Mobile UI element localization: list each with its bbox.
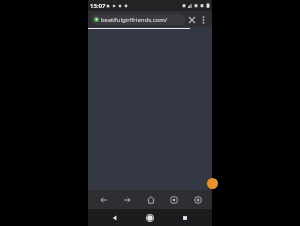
button[interactable]: Home	[142, 210, 158, 226]
button[interactable]: Recents	[177, 210, 193, 226]
button[interactable]: Menu	[189, 191, 206, 208]
staticText: beatifulgirlfriends.com/	[99, 16, 168, 24]
button[interactable]: Back	[107, 210, 123, 226]
button[interactable]: Close tab	[185, 13, 198, 26]
button[interactable]: Forward	[118, 191, 135, 208]
button[interactable]: More options	[198, 14, 209, 25]
button[interactable]: Home	[142, 191, 159, 208]
button[interactable]: beatifulgirlfriends.com/	[91, 14, 185, 25]
button[interactable]: Back	[95, 191, 112, 208]
button[interactable]: Tabs	[165, 191, 182, 208]
staticText: 15:07	[90, 2, 106, 10]
